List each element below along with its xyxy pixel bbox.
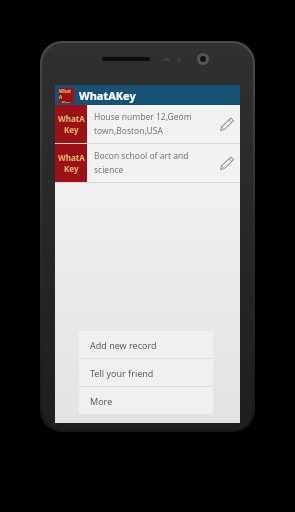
staticText: Key [62,100,71,103]
button[interactable]: Add new record [79,331,213,358]
staticText: WhatA [58,113,85,124]
button[interactable]: WhatA [55,85,240,105]
staticText: Key [64,124,79,135]
staticText: Key [64,163,79,174]
staticText: Bocon school of art and [94,150,189,162]
staticText: WhatA [59,88,74,100]
staticText: House number 12,Geom [94,111,192,123]
button[interactable]: WhatA [55,144,240,182]
staticText: town,Boston,USA [94,125,163,137]
staticText: WhatA [58,152,85,163]
staticText: Tell your friend [90,367,154,379]
button[interactable]: Tell your friend [79,359,213,386]
button[interactable]: More [79,387,213,414]
button[interactable]: WhatA [55,105,240,143]
staticText: WhatAKey [79,88,136,103]
staticText: science [94,164,124,176]
button[interactable]: Edit [214,150,240,176]
staticText: More [90,395,113,407]
staticText: Add new record [90,339,157,351]
button[interactable]: Edit [214,111,240,137]
